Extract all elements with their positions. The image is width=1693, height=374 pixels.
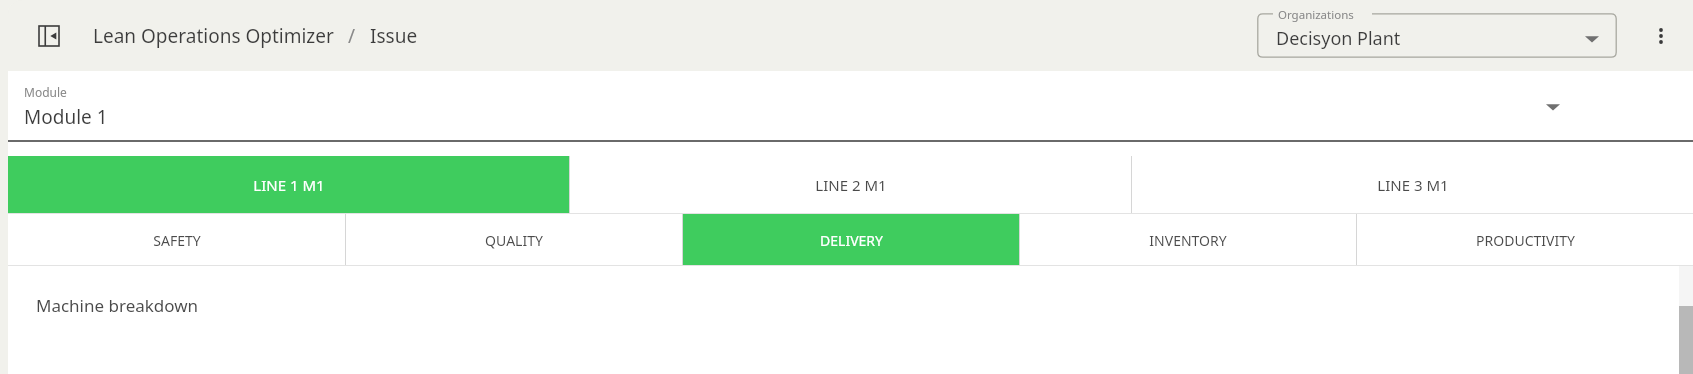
button[interactable]: Issue (370, 23, 418, 49)
staticText: DELIVERY (820, 231, 883, 250)
staticText: INVENTORY (1149, 231, 1227, 250)
button[interactable]: Lean Operations Optimizer (93, 23, 334, 49)
staticText: Lean Operations Optimizer (93, 23, 334, 49)
staticText: Module 1 (24, 104, 108, 130)
button[interactable]: DELIVERY (683, 214, 1019, 266)
button[interactable]: Module (8, 71, 1693, 142)
staticText: SAFETY (153, 231, 201, 250)
button[interactable]: PRODUCTIVITY (1357, 214, 1693, 266)
button[interactable]: LINE 3 M1 (1132, 156, 1693, 214)
staticText: Decisyon Plant (1276, 26, 1401, 51)
button[interactable]: LINE 1 M1 (8, 156, 569, 214)
button[interactable]: LINE 2 M1 (570, 156, 1131, 214)
button[interactable]: QUALITY (346, 214, 682, 266)
staticText: Machine breakdown (36, 294, 199, 317)
staticText: QUALITY (485, 231, 543, 250)
button[interactable]: INVENTORY (1020, 214, 1356, 266)
staticText: LINE 3 M1 (1377, 175, 1449, 195)
staticText: LINE 2 M1 (815, 175, 887, 195)
staticText: PRODUCTIVITY (1476, 231, 1575, 250)
staticText: Organizations (1278, 7, 1354, 23)
button[interactable]: SAFETY (8, 214, 345, 266)
staticText: Module (24, 84, 67, 100)
staticText: LINE 1 M1 (253, 175, 325, 195)
button[interactable]: Organizations (1257, 13, 1617, 58)
staticText: / (348, 23, 356, 49)
button[interactable]: Collapse sidebar (32, 19, 66, 53)
staticText: Issue (370, 23, 418, 49)
button[interactable]: More options (1643, 18, 1679, 54)
